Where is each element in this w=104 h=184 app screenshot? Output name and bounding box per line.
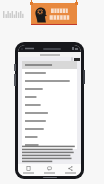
button[interactable] bbox=[22, 77, 77, 85]
button[interactable]: Examples bbox=[39, 164, 60, 176]
button[interactable] bbox=[22, 133, 77, 141]
button[interactable]: Bookmarks bbox=[18, 164, 39, 176]
button[interactable] bbox=[22, 125, 77, 133]
button[interactable] bbox=[31, 3, 77, 25]
button[interactable] bbox=[22, 109, 77, 117]
button[interactable] bbox=[22, 93, 77, 101]
button[interactable] bbox=[22, 117, 77, 125]
button[interactable]: More options bbox=[70, 57, 80, 61]
button[interactable] bbox=[22, 61, 77, 69]
button[interactable] bbox=[22, 101, 77, 109]
button[interactable] bbox=[22, 141, 77, 149]
button[interactable] bbox=[22, 69, 77, 77]
button[interactable] bbox=[22, 85, 77, 93]
button[interactable]: Share bbox=[60, 164, 81, 176]
